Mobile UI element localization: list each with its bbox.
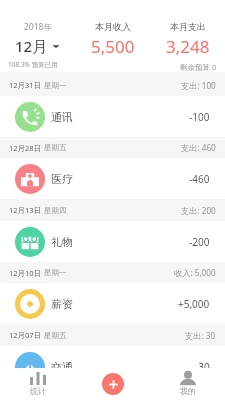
staticText: -100 bbox=[189, 110, 210, 124]
staticText: 星期五 bbox=[44, 331, 67, 340]
staticText: 支出: 460 bbox=[181, 142, 216, 153]
staticText: 通讯 bbox=[51, 110, 73, 124]
staticText: 支出: 30 bbox=[185, 330, 216, 341]
staticText: 星期四 bbox=[44, 206, 67, 215]
staticText: 星期一 bbox=[44, 268, 67, 277]
button[interactable]: 交通 bbox=[0, 346, 225, 387]
staticText: 2018年 bbox=[24, 21, 52, 33]
staticText: 支出: 100 bbox=[181, 80, 216, 91]
button[interactable]: Add record bbox=[102, 373, 124, 395]
staticText: 我的 bbox=[180, 386, 196, 396]
staticText: 12月13日 bbox=[9, 205, 42, 215]
staticText: 12月28日 bbox=[9, 143, 42, 153]
staticText: 本月支出 bbox=[170, 21, 206, 32]
staticText: 12月07日 bbox=[9, 330, 42, 340]
staticText: -460 bbox=[189, 172, 210, 186]
staticText: 5,500 bbox=[91, 35, 135, 58]
staticText: +5,000 bbox=[178, 297, 210, 311]
staticText: 12月 bbox=[15, 36, 48, 56]
staticText: -200 bbox=[189, 235, 210, 249]
staticText: 星期一 bbox=[44, 81, 67, 90]
staticText: 统计 bbox=[30, 386, 46, 396]
button[interactable]: 我的 bbox=[150, 368, 225, 396]
staticText: 剩余预算 0 bbox=[180, 62, 217, 72]
staticText: 收入: 5,000 bbox=[174, 267, 216, 278]
staticText: 12月10日 bbox=[9, 268, 42, 278]
staticText: 12月31日 bbox=[9, 80, 42, 90]
staticText: 医疗 bbox=[51, 172, 73, 186]
button[interactable]: 薪资 bbox=[0, 283, 225, 324]
staticText: 本月收入 bbox=[95, 21, 131, 32]
staticText: 礼物 bbox=[51, 235, 73, 249]
button[interactable]: 礼物 bbox=[0, 221, 225, 262]
staticText: -30 bbox=[195, 360, 210, 374]
button[interactable]: 医疗 bbox=[0, 158, 225, 199]
staticText: 星期五 bbox=[44, 143, 67, 152]
staticText: 108.3% 预算已用 bbox=[8, 60, 58, 69]
staticText: 支出: 200 bbox=[181, 205, 216, 216]
staticText: 薪资 bbox=[51, 297, 73, 311]
staticText: 3,248 bbox=[166, 35, 210, 58]
button[interactable]: 统计 bbox=[0, 368, 75, 396]
staticText: 交通 bbox=[51, 360, 73, 374]
button[interactable]: 通讯 bbox=[0, 96, 225, 137]
